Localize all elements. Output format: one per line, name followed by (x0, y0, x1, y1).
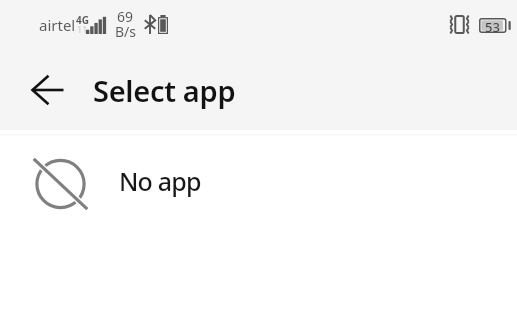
button[interactable]: Back (24, 66, 72, 114)
staticText: 69 (117, 7, 134, 26)
staticText: Select app (93, 71, 236, 110)
staticText: 11 (77, 23, 88, 35)
staticText: B/s (115, 22, 137, 41)
staticText: 53 (485, 18, 500, 33)
staticText: airtel (39, 15, 76, 35)
staticText: 4G (76, 13, 89, 27)
button[interactable]: No app (0, 136, 517, 232)
staticText: No app (119, 164, 201, 198)
